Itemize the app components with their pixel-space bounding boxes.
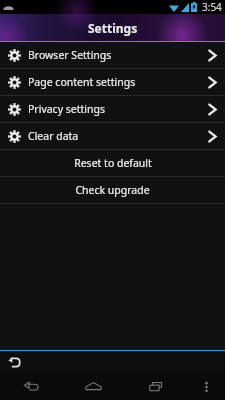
staticText: Browser Settings (28, 48, 112, 62)
staticText: Check upgrade (75, 183, 150, 197)
staticText: Reset to default (74, 156, 152, 170)
button[interactable]: Recent apps (124, 373, 187, 400)
button[interactable]: Home (62, 373, 124, 400)
button[interactable]: Check upgrade (0, 177, 225, 203)
button[interactable]: Back (6, 354, 22, 370)
staticText: Clear data (28, 129, 79, 143)
staticText: 3:54 (202, 0, 222, 14)
button[interactable]: Reset to default (0, 150, 225, 176)
button[interactable]: Privacy settings (0, 96, 225, 122)
staticText: Privacy settings (28, 102, 105, 116)
button[interactable]: Browser Settings (0, 42, 225, 68)
button[interactable]: Clear data (0, 123, 225, 149)
button[interactable]: Back (0, 373, 62, 400)
button[interactable]: More options (187, 373, 225, 400)
staticText: Settings (88, 20, 138, 36)
staticText: Page content settings (28, 75, 136, 89)
button[interactable]: Page content settings (0, 69, 225, 95)
